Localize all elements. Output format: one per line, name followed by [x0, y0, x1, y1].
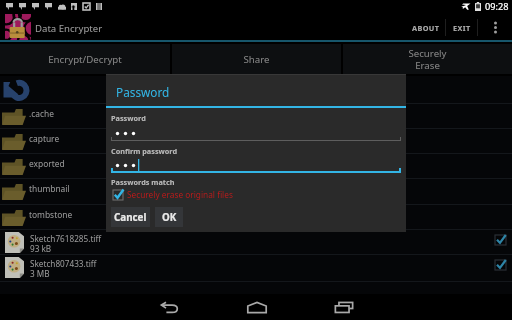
staticText: Sketch7618285.tiff	[30, 233, 102, 244]
staticText: ABOUT	[412, 23, 440, 33]
button[interactable]: Cancel	[111, 207, 150, 227]
button[interactable]: Sketch7618285.tiff	[0, 229, 512, 254]
staticText: Password	[111, 113, 146, 123]
button[interactable]: Recent apps	[317, 294, 370, 320]
staticText: tombstone	[29, 209, 73, 220]
staticText: Encrypt/Decrypt	[48, 53, 122, 66]
staticText: Sketch807433.tiff	[30, 258, 97, 269]
staticText: Data Encrypter	[35, 22, 103, 35]
button[interactable]: Securely erase original files	[113, 189, 233, 200]
button[interactable]: exported	[0, 153, 512, 178]
button[interactable]: tombstone	[0, 204, 512, 229]
staticText: 3 MB	[30, 268, 50, 279]
staticText: OK	[162, 211, 177, 224]
button[interactable]: .cache	[0, 103, 512, 128]
button[interactable]: thumbnail	[0, 178, 512, 203]
staticText: Securely Erase	[408, 47, 447, 72]
button[interactable]: Encrypt/Decrypt	[0, 44, 170, 74]
staticText: 09:28	[485, 0, 509, 13]
button[interactable]: Back	[143, 294, 196, 320]
staticText: Passwords match	[111, 177, 175, 187]
staticText: capture	[29, 133, 60, 144]
staticText: .cache	[29, 108, 54, 119]
button[interactable]: More options	[478, 13, 512, 42]
staticText: 93 kB	[30, 243, 52, 254]
button[interactable]: EXIT	[446, 13, 477, 42]
staticText: Cancel	[114, 211, 147, 224]
button[interactable]: Home	[230, 294, 283, 320]
staticText: Confirm password	[111, 146, 178, 156]
button[interactable]: Up one level	[0, 76, 512, 102]
staticText: Share	[243, 53, 270, 66]
button[interactable]: Securely Erase	[343, 44, 512, 74]
button[interactable]: capture	[0, 128, 512, 153]
staticText: thumbnail	[29, 183, 70, 194]
button[interactable]: ABOUT	[406, 13, 445, 42]
staticText: Password	[116, 84, 170, 100]
staticText: exported	[29, 158, 65, 169]
staticText: EXIT	[453, 23, 471, 33]
button[interactable]: OK	[155, 207, 183, 227]
button[interactable]: Sketch807433.tiff	[0, 254, 512, 281]
button[interactable]: Share	[172, 44, 341, 74]
staticText: Securely erase original files	[127, 189, 233, 200]
